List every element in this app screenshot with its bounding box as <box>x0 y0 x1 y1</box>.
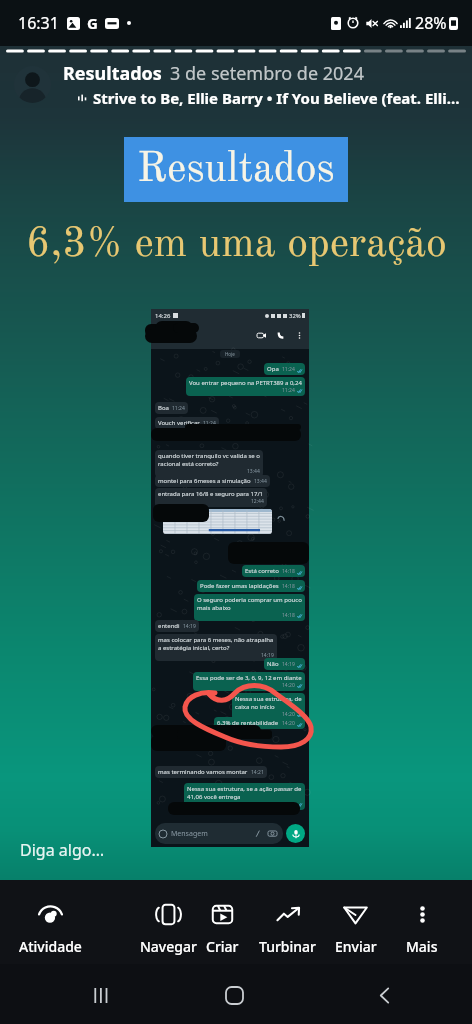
staticText: Opa <box>267 365 279 373</box>
staticText: 12:44 <box>251 498 264 505</box>
staticText: Nessa sua estrutura, se a ação passar de… <box>187 785 302 801</box>
staticText: entendi <box>158 622 180 630</box>
staticText: 14:20 <box>282 682 295 689</box>
staticText: 6,3% em uma operação <box>26 224 447 266</box>
button[interactable]: Back <box>358 969 410 1021</box>
staticText: 11:24 <box>282 366 295 373</box>
staticText: Não <box>267 660 279 668</box>
button[interactable]: Atividade <box>0 880 101 976</box>
staticText: Strive to Be, Ellie Barry • If You Belie… <box>93 88 460 108</box>
staticText: mas colocar para 6 meses, não atrapalha … <box>158 636 274 652</box>
staticText: Resultados <box>137 149 335 191</box>
staticText: 14:18 <box>282 583 295 590</box>
staticText: Boa <box>158 404 169 412</box>
staticText: 13:44 <box>254 478 267 485</box>
staticText: 14:19 <box>282 661 295 668</box>
staticText: 11:24 <box>172 405 185 412</box>
staticText: Atividade <box>19 937 82 956</box>
staticText: 14:26 <box>155 312 171 320</box>
staticText: 14:20 <box>282 720 295 727</box>
staticText: 14:22 <box>282 801 295 808</box>
staticText: 3 de setembro de 2024 <box>170 61 364 86</box>
staticText: 14:20 <box>282 711 295 718</box>
button[interactable]: Criar <box>196 880 248 976</box>
staticText: 14:18 <box>282 568 295 575</box>
button[interactable]: Home <box>208 969 260 1021</box>
staticText: 28% <box>415 12 447 34</box>
staticText: Criar <box>206 937 239 956</box>
staticText: Está correto <box>245 567 279 575</box>
button[interactable]: Enviar <box>325 880 386 976</box>
staticText: 6,3% de rentabilidade <box>217 719 279 727</box>
staticText: O seguro poderia comprar um pouco mais a… <box>197 596 302 612</box>
staticText: Vouch verificar <box>158 419 200 427</box>
staticText: mas terminando vamos montar <box>158 768 248 776</box>
staticText: 11:24 <box>282 387 295 394</box>
button[interactable]: Mais <box>392 880 452 976</box>
staticText: Mais <box>406 937 438 956</box>
staticText: Enviar <box>335 937 377 956</box>
button[interactable]: Recent apps <box>74 969 126 1021</box>
staticText: Nessa sua estrutura, de caixa no início <box>235 695 302 711</box>
staticText: 14:19 <box>183 623 196 630</box>
button[interactable]: Diga algo… <box>20 828 472 872</box>
button[interactable]: Navegar <box>127 880 209 976</box>
staticText: quando tiver tranquilo vc valida se o ra… <box>158 452 260 468</box>
staticText: 32% <box>289 312 301 320</box>
staticText: Turbinar <box>259 937 317 956</box>
staticText: 14:18 <box>282 612 295 619</box>
staticText: 14:19 <box>261 652 274 659</box>
staticText: Pode fazer umas lapidações <box>200 582 279 590</box>
staticText: montei para 6meses a simulação <box>158 477 251 485</box>
staticText: 11:24 <box>203 420 216 427</box>
staticText: Essa pode ser de 3, 6, 9, 12 em diante <box>196 674 302 682</box>
staticText: Diga algo… <box>20 839 105 861</box>
staticText: 14:21 <box>251 769 264 776</box>
staticText: Vou entrar pequeno na PETRT389 a 0,24 <box>189 379 302 387</box>
button[interactable]: Resultados <box>14 61 462 108</box>
staticText: 13:44 <box>247 468 260 475</box>
staticText: Navegar <box>140 937 197 956</box>
staticText: Resultados <box>63 61 162 86</box>
button[interactable]: Turbinar <box>254 880 322 976</box>
staticText: Mensagem <box>171 829 208 839</box>
staticText: Hoje <box>225 351 235 357</box>
staticText: 16:31 <box>18 12 59 34</box>
staticText: G <box>87 13 98 33</box>
staticText: entrada para 16/8 e seguro para 17/1 <box>158 490 264 498</box>
